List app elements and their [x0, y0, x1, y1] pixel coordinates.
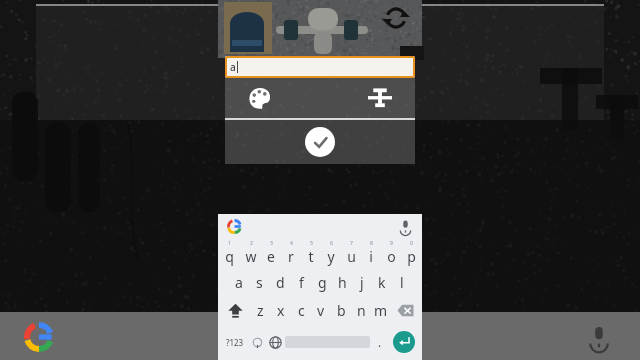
- staticText: p: [407, 247, 416, 266]
- button[interactable]: 3: [261, 238, 281, 268]
- button[interactable]: 6: [321, 238, 341, 268]
- staticText: 7: [350, 240, 353, 247]
- staticText: 6: [330, 240, 333, 247]
- staticText: s: [256, 273, 263, 292]
- button[interactable]: Google: [20, 318, 58, 356]
- staticText: g: [318, 273, 327, 292]
- button[interactable]: Enter: [393, 331, 415, 353]
- button[interactable]: 8: [361, 238, 381, 268]
- button[interactable]: Done: [305, 127, 335, 157]
- button[interactable]: 5: [301, 238, 321, 268]
- staticText: 0: [410, 240, 413, 247]
- staticText: k: [378, 273, 386, 292]
- button[interactable]: Google: [224, 216, 244, 236]
- staticText: q: [225, 247, 234, 266]
- button[interactable]: Colour: [243, 81, 277, 115]
- staticText: d: [276, 273, 285, 292]
- button[interactable]: z: [250, 296, 271, 324]
- staticText: i: [369, 247, 373, 266]
- staticText: h: [338, 273, 347, 292]
- button[interactable]: l: [392, 268, 412, 296]
- button[interactable]: a: [228, 268, 249, 296]
- button[interactable]: Shift: [220, 296, 250, 324]
- button[interactable]: 2: [240, 238, 261, 268]
- button[interactable]: ?123: [221, 327, 248, 357]
- button[interactable]: j: [352, 268, 372, 296]
- staticText: t: [308, 247, 314, 266]
- button[interactable]: 9: [381, 238, 401, 268]
- button[interactable]: x: [271, 296, 291, 324]
- button[interactable]: .: [370, 327, 389, 357]
- button[interactable]: d: [270, 268, 291, 296]
- button[interactable]: b: [331, 296, 351, 324]
- staticText: 2: [250, 240, 253, 247]
- button[interactable]: 4: [281, 238, 301, 268]
- staticText: .: [378, 334, 382, 350]
- staticText: 1: [228, 240, 231, 247]
- button[interactable]: v: [311, 296, 331, 324]
- staticText: b: [337, 301, 346, 320]
- staticText: ?123: [226, 337, 244, 348]
- button[interactable]: Change language: [266, 327, 285, 357]
- button[interactable]: Emoji: [248, 327, 266, 357]
- staticText: e: [267, 247, 275, 266]
- staticText: x: [277, 301, 285, 320]
- staticText: j: [360, 273, 364, 292]
- button[interactable]: f: [291, 268, 312, 296]
- button[interactable]: s: [249, 268, 270, 296]
- button[interactable]: Text alignment: [363, 81, 397, 115]
- button[interactable]: Backspace: [391, 296, 420, 324]
- button[interactable]: 0: [401, 238, 421, 268]
- staticText: y: [327, 247, 335, 266]
- button[interactable]: Voice search: [582, 320, 616, 354]
- staticText: 8: [370, 240, 373, 247]
- staticText: n: [357, 301, 366, 320]
- staticText: u: [347, 247, 356, 266]
- button[interactable]: m: [371, 296, 391, 324]
- staticText: 4: [290, 240, 293, 247]
- button[interactable]: 1: [219, 238, 240, 268]
- staticText: 9: [390, 240, 393, 247]
- button[interactable]: g: [312, 268, 332, 296]
- staticText: a: [230, 60, 236, 74]
- staticText: z: [257, 301, 264, 320]
- button[interactable]: 7: [341, 238, 361, 268]
- staticText: w: [245, 247, 257, 266]
- staticText: l: [400, 273, 404, 292]
- staticText: c: [298, 301, 305, 320]
- staticText: r: [288, 247, 294, 266]
- button[interactable]: h: [332, 268, 352, 296]
- button[interactable]: Voice input: [395, 216, 415, 236]
- staticText: o: [387, 247, 396, 266]
- staticText: a: [235, 273, 243, 292]
- staticText: 5: [310, 240, 313, 247]
- staticText: v: [317, 301, 325, 320]
- button[interactable]: c: [291, 296, 311, 324]
- staticText: 3: [270, 240, 273, 247]
- staticText: f: [299, 273, 304, 292]
- button[interactable]: n: [351, 296, 371, 324]
- staticText: m: [374, 301, 388, 320]
- button[interactable]: k: [372, 268, 392, 296]
- button[interactable]: a: [225, 56, 415, 78]
